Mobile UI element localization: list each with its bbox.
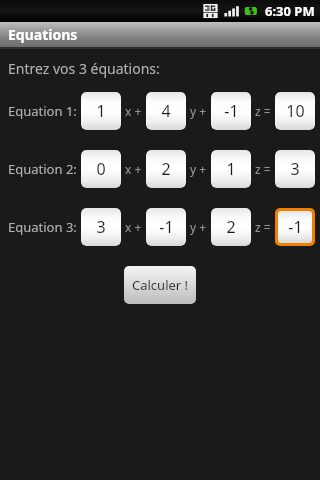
staticText: Equation 3: [8,218,77,236]
button[interactable]: -1 [211,92,251,130]
staticText: Calculer ! [132,276,189,294]
staticText: 2 [161,158,171,180]
button[interactable]: Calculer ! [124,266,196,304]
staticText: Equation 2: [8,160,77,178]
button[interactable]: -1 [278,211,312,243]
staticText: y + [190,161,207,177]
staticText: y + [190,103,207,119]
staticText: Equation 1: [8,102,77,120]
staticText: 1 [226,158,236,180]
staticText: 4 [161,100,171,122]
button[interactable]: 1 [211,150,251,188]
button[interactable]: 1 [81,92,121,130]
staticText: Entrez vos 3 équations: [8,59,160,78]
staticText: 1 [96,100,106,122]
staticText: 0 [96,158,106,180]
button[interactable]: 0 [81,150,121,188]
button[interactable]: 4 [146,92,186,130]
button[interactable]: 3 [81,208,121,246]
staticText: x + [125,103,142,119]
staticText: -1 [159,216,174,238]
button[interactable]: 2 [211,208,251,246]
staticText: z = [255,219,271,235]
staticText: 6:30 PM [265,2,315,20]
staticText: 3 [290,158,300,180]
staticText: y + [190,219,207,235]
staticText: z = [255,161,271,177]
staticText: 2 [226,216,236,238]
staticText: z = [255,103,271,119]
button[interactable]: 10 [275,92,315,130]
button[interactable]: 3 [275,150,315,188]
staticText: Equations [8,25,78,44]
staticText: 3 [96,216,106,238]
staticText: -1 [224,100,239,122]
button[interactable]: 2 [146,150,186,188]
staticText: x + [125,161,142,177]
staticText: x + [125,219,142,235]
staticText: -1 [288,216,303,238]
staticText: 10 [286,100,305,122]
button[interactable]: -1 [146,208,186,246]
